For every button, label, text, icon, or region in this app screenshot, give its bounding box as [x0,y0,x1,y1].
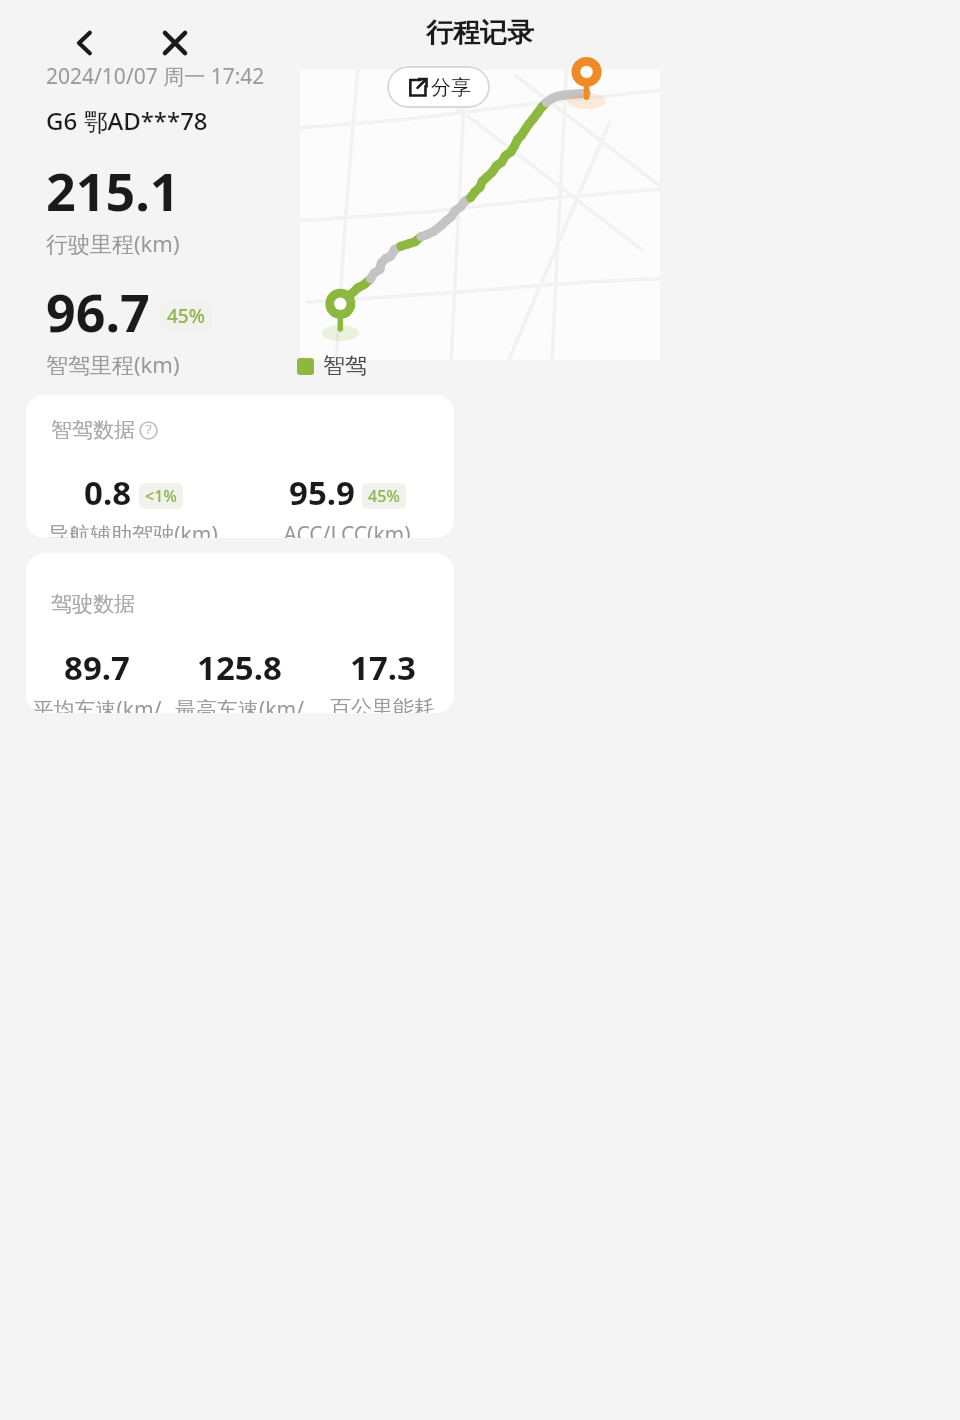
button[interactable]: 智驾数据 [26,395,454,538]
staticText: 行程记录 [426,16,534,50]
staticText: 45% [368,485,400,507]
staticText: 平均车速(km/h) [26,695,168,713]
staticText: 2024/10/07 周一 17:42 [46,62,265,91]
staticText: 智驾 [323,352,367,380]
staticText: 最高车速(km/h) [168,695,311,713]
staticText: 行程时长(h) [46,470,161,500]
staticText: 行驶里程(km) [46,228,180,258]
staticText: G6 鄂AD***78 [46,104,208,137]
staticText: 智驾里程(km) [46,349,180,379]
staticText: 17.3 [350,645,416,690]
staticText: ? [146,420,152,438]
staticText: 分享 [431,75,471,100]
button[interactable]: Close [140,8,210,78]
staticText: 导航辅助驾驶(km) [48,520,218,538]
staticText: 2.5 [46,397,121,468]
staticText: 125.8 [197,645,282,690]
button[interactable]: 分享 [387,66,490,108]
staticText: 0.8 [84,470,132,515]
button[interactable]: Back [50,8,120,78]
staticText: 百公里能耗(kWh) [311,695,454,713]
staticText: 45% [167,303,205,329]
staticText: 89.7 [64,645,130,690]
staticText: 215.1 [46,155,180,226]
staticText: ACC/LCC(km) [283,520,411,538]
staticText: <1% [145,485,177,507]
staticText: 95.9 [289,470,355,515]
staticText: 智驾数据 [51,417,135,443]
staticText: 96.7 [46,276,150,347]
staticText: 驾驶数据 [51,591,135,617]
button[interactable]: 驾驶数据 [26,553,454,713]
